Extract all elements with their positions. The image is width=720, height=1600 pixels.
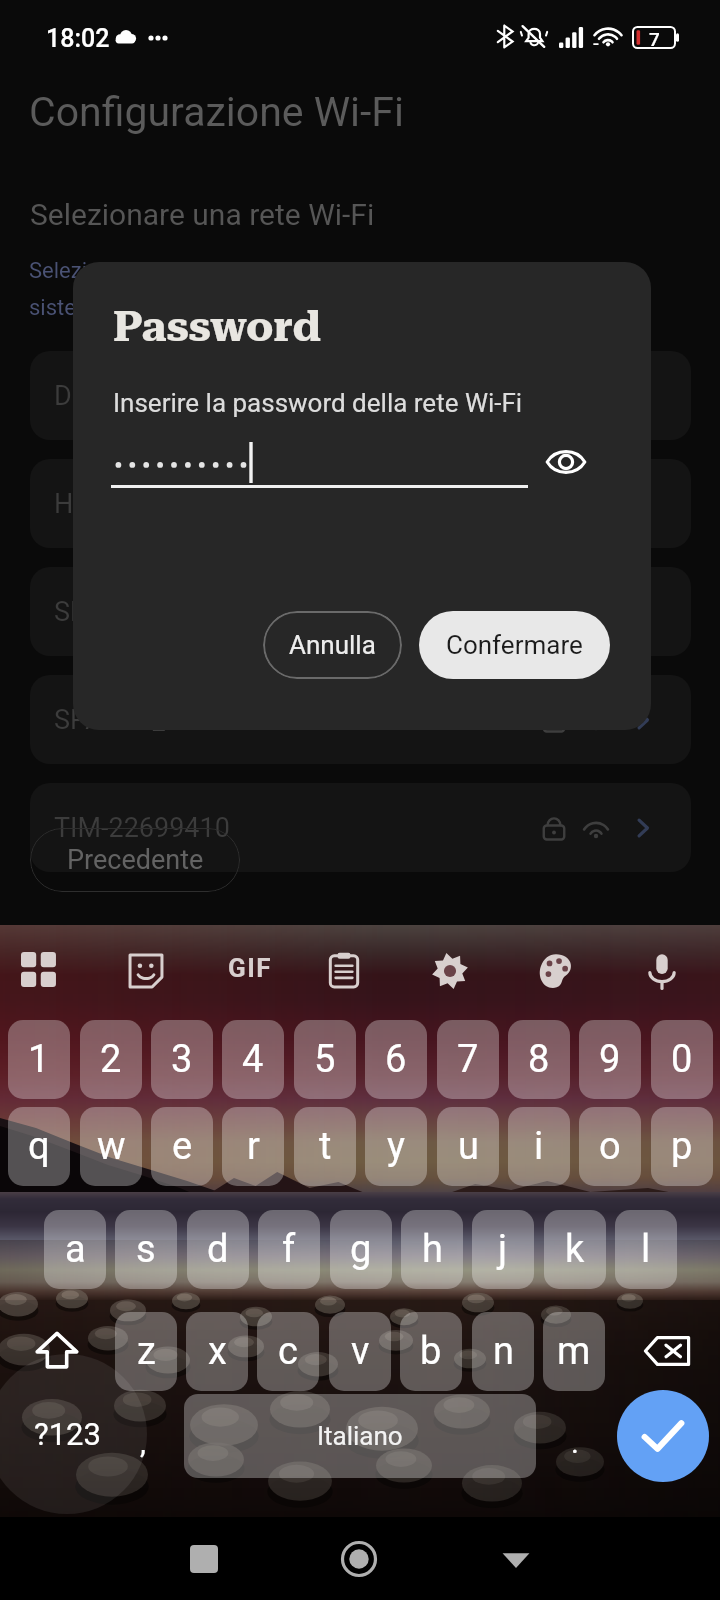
staticText: HUAWEI-B311 (54, 488, 224, 520)
button[interactable]: Italiano (184, 1394, 536, 1478)
staticText: l (641, 1227, 651, 1272)
staticText: SPAVVA_2865 5 (54, 704, 248, 736)
button[interactable]: 1 (8, 1020, 70, 1099)
staticText: 0 (671, 1037, 693, 1082)
staticText: 3 (171, 1037, 193, 1082)
button[interactable]: Mostra password (528, 424, 604, 500)
staticText: GIF (228, 953, 273, 983)
button[interactable]: c (257, 1312, 319, 1391)
button[interactable]: HUAWEI-B311 (30, 459, 691, 548)
staticText: 7 (457, 1037, 479, 1082)
button[interactable]: Precedente (30, 828, 240, 892)
button[interactable]: e (151, 1107, 213, 1186)
button[interactable]: Home (325, 1525, 393, 1593)
button[interactable]: ?123 (0, 1354, 147, 1514)
button[interactable]: Maiuscole (9, 1312, 105, 1390)
button[interactable]: d (187, 1210, 249, 1289)
button[interactable]: j (472, 1210, 534, 1289)
staticText: , (140, 1425, 146, 1460)
staticText: r (247, 1124, 260, 1169)
staticText: 18:02 (46, 24, 110, 53)
button[interactable]: r (222, 1107, 284, 1186)
staticText: s (136, 1227, 156, 1272)
staticText: d (207, 1227, 229, 1272)
staticText: Configurazione Wi-Fi (29, 88, 405, 136)
button[interactable]: Tastiere (6, 937, 74, 1005)
button[interactable]: a (44, 1210, 106, 1289)
button[interactable]: s (115, 1210, 177, 1289)
button[interactable]: g (330, 1210, 392, 1289)
button[interactable]: Impostazioni (416, 937, 484, 1005)
button[interactable]: t (294, 1107, 356, 1186)
button[interactable]: v (329, 1312, 391, 1391)
staticText: 5 (314, 1037, 336, 1082)
button[interactable]: , (112, 1422, 174, 1462)
button[interactable]: Emoji (112, 937, 180, 1005)
staticText: w (97, 1124, 126, 1169)
button[interactable]: k (544, 1210, 606, 1289)
staticText: n (493, 1329, 514, 1374)
button[interactable]: m (543, 1312, 605, 1391)
button[interactable]: 3 (151, 1020, 213, 1099)
button[interactable]: Confermare (419, 611, 610, 679)
staticText: c (278, 1329, 298, 1374)
staticText: k (565, 1227, 585, 1272)
staticText: h (422, 1227, 443, 1272)
button[interactable]: 9 (579, 1020, 641, 1099)
staticText: i (534, 1124, 544, 1169)
button[interactable]: TIM-22699410 (30, 783, 691, 872)
button[interactable]: l (615, 1210, 677, 1289)
button[interactable]: y (365, 1107, 427, 1186)
staticText: SKYW1FI-3B2 (54, 596, 220, 628)
staticText: a (65, 1227, 86, 1272)
staticText: Confermare (446, 630, 583, 660)
staticText: Password (113, 302, 321, 352)
button[interactable]: b (400, 1312, 462, 1391)
button[interactable]: 6 (365, 1020, 427, 1099)
button[interactable]: h (401, 1210, 463, 1289)
button[interactable]: 5 (294, 1020, 356, 1099)
button[interactable]: o (579, 1107, 641, 1186)
button[interactable]: 7 (437, 1020, 499, 1099)
button[interactable]: u (437, 1107, 499, 1186)
staticText: Italiano (317, 1421, 403, 1451)
button[interactable]: Backspace (622, 1312, 712, 1390)
staticText: Annulla (289, 630, 376, 660)
staticText: Selezionare una rete Wi-Fi (30, 197, 375, 232)
button[interactable]: z (115, 1312, 177, 1391)
staticText: 8 (528, 1037, 550, 1082)
staticText: g (350, 1227, 372, 1272)
staticText: 9 (599, 1037, 621, 1082)
button[interactable]: 0 (651, 1020, 713, 1099)
staticText: Inserire la password della rete Wi-Fi (113, 388, 523, 418)
staticText: 6 (385, 1037, 407, 1082)
staticText: 2 (100, 1037, 122, 1082)
button[interactable]: Temi (522, 937, 590, 1005)
staticText: e (172, 1124, 193, 1169)
staticText: q (28, 1124, 50, 1169)
staticText: ?123 (34, 1416, 101, 1452)
button[interactable]: q (8, 1107, 70, 1186)
button[interactable]: f (258, 1210, 320, 1289)
button[interactable]: w (80, 1107, 142, 1186)
button[interactable]: p (651, 1107, 713, 1186)
button[interactable]: 8 (508, 1020, 570, 1099)
button[interactable]: Annulla (263, 611, 402, 679)
staticText: t (319, 1124, 332, 1169)
button[interactable]: 4 (222, 1020, 284, 1099)
button[interactable]: Dlink-AP24 (30, 351, 691, 440)
button[interactable]: x (186, 1312, 248, 1391)
button[interactable]: Chiudi tastiera (482, 1525, 550, 1593)
staticText: m (557, 1329, 591, 1374)
button[interactable]: SPAVVA_2865 5 (30, 675, 691, 764)
button[interactable]: Invio (617, 1390, 709, 1482)
button[interactable]: . (544, 1422, 606, 1462)
button[interactable]: n (472, 1312, 534, 1391)
button[interactable]: 2 (80, 1020, 142, 1099)
staticText: j (498, 1227, 508, 1272)
button[interactable]: Appunti (310, 937, 378, 1005)
button[interactable]: SKYW1FI-3B2 (30, 567, 691, 656)
button[interactable]: Recenti (170, 1525, 238, 1593)
button[interactable]: i (508, 1107, 570, 1186)
button[interactable]: Voce (628, 937, 696, 1005)
